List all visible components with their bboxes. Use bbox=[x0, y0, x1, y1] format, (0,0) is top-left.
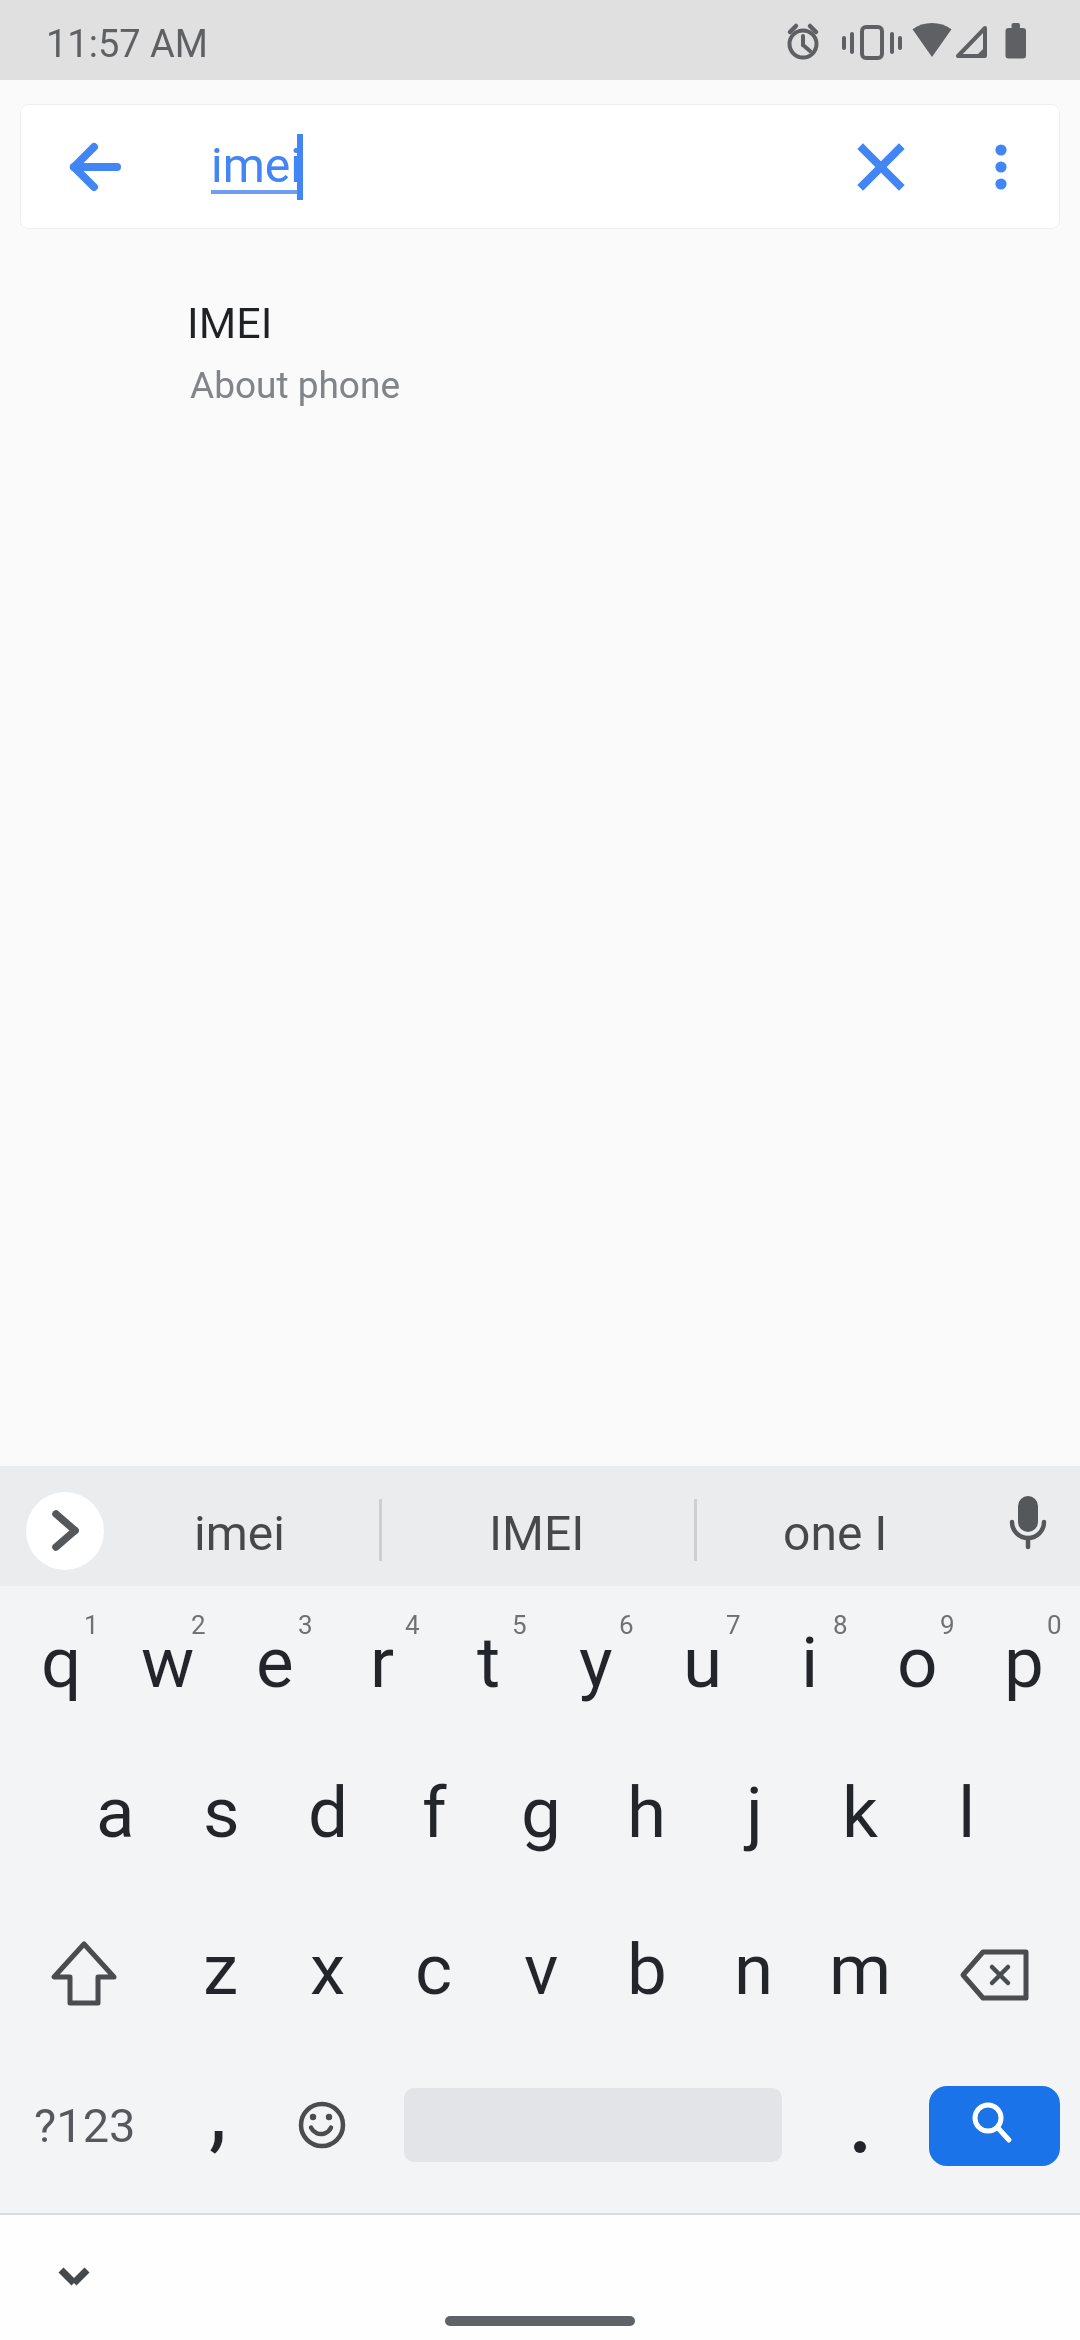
staticText: , bbox=[209, 2058, 227, 2163]
staticText: e bbox=[256, 1621, 294, 1704]
button[interactable]: i bbox=[757, 1592, 863, 1744]
button[interactable]: j bbox=[701, 1742, 807, 1894]
button[interactable] bbox=[30, 2051, 150, 2199]
staticText: x bbox=[310, 1928, 346, 2011]
button[interactable]: n bbox=[701, 1899, 807, 2051]
staticText: 4 bbox=[405, 1610, 420, 1640]
staticText: 8 bbox=[833, 1610, 848, 1640]
button[interactable]: q bbox=[8, 1592, 114, 1744]
button[interactable] bbox=[929, 2086, 1060, 2166]
button[interactable]: c bbox=[381, 1899, 487, 2051]
button[interactable]: s bbox=[168, 1742, 274, 1894]
button[interactable]: k bbox=[807, 1742, 913, 1894]
staticText: 11:57 AM bbox=[46, 22, 209, 67]
staticText: About phone bbox=[190, 364, 401, 407]
staticText: h bbox=[627, 1771, 667, 1854]
button[interactable] bbox=[25, 1899, 145, 2051]
staticText: one I bbox=[783, 1505, 888, 1561]
staticText: 3 bbox=[298, 1610, 313, 1640]
button[interactable]: b bbox=[594, 1899, 700, 2051]
button[interactable] bbox=[0, 255, 1080, 440]
staticText: imei bbox=[194, 1505, 285, 1561]
staticText: f bbox=[422, 1771, 447, 1854]
staticText: c bbox=[415, 1928, 453, 2011]
staticText: t bbox=[477, 1621, 501, 1704]
button[interactable]: m bbox=[807, 1899, 913, 2051]
staticText: ?123 bbox=[34, 2098, 136, 2153]
staticText: l bbox=[958, 1771, 976, 1854]
button[interactable]: h bbox=[594, 1742, 700, 1894]
staticText: d bbox=[308, 1771, 349, 1854]
staticText: imei bbox=[211, 137, 302, 193]
button[interactable]: z bbox=[168, 1899, 274, 2051]
staticText: 2 bbox=[191, 1610, 206, 1640]
staticText: w bbox=[141, 1621, 195, 1704]
staticText: 7 bbox=[726, 1610, 741, 1640]
staticText: m bbox=[829, 1928, 892, 2011]
button[interactable]: d bbox=[275, 1742, 381, 1894]
button[interactable] bbox=[168, 2051, 268, 2199]
button[interactable]: x bbox=[275, 1899, 381, 2051]
button[interactable]: p bbox=[971, 1592, 1077, 1744]
button[interactable]: w bbox=[115, 1592, 221, 1744]
button[interactable]: v bbox=[488, 1899, 594, 2051]
staticText: p bbox=[1004, 1621, 1044, 1704]
button[interactable]: r bbox=[329, 1592, 435, 1744]
staticText: s bbox=[203, 1771, 240, 1854]
staticText: r bbox=[370, 1621, 395, 1704]
staticText: 6 bbox=[619, 1610, 634, 1640]
button[interactable]: o bbox=[864, 1592, 970, 1744]
button[interactable]: f bbox=[381, 1742, 487, 1894]
button[interactable] bbox=[699, 1466, 969, 1586]
staticText: z bbox=[203, 1928, 239, 2011]
button[interactable] bbox=[971, 137, 1031, 197]
button[interactable] bbox=[851, 137, 911, 197]
button[interactable]: t bbox=[436, 1592, 542, 1744]
staticText: g bbox=[521, 1771, 561, 1854]
button[interactable] bbox=[40, 2242, 110, 2312]
button[interactable]: e bbox=[222, 1592, 328, 1744]
button[interactable] bbox=[936, 1899, 1056, 2051]
button[interactable] bbox=[994, 1496, 1062, 1564]
button[interactable]: l bbox=[914, 1742, 1020, 1894]
staticText: u bbox=[683, 1621, 723, 1704]
button[interactable] bbox=[384, 1466, 692, 1586]
staticText: i bbox=[801, 1621, 819, 1704]
button[interactable]: g bbox=[488, 1742, 594, 1894]
staticText: IMEI bbox=[489, 1505, 585, 1561]
staticText: 5 bbox=[512, 1610, 527, 1640]
button[interactable]: a bbox=[62, 1742, 168, 1894]
staticText: n bbox=[734, 1928, 774, 2011]
button[interactable]: y bbox=[543, 1592, 649, 1744]
staticText: b bbox=[627, 1928, 667, 2011]
staticText: 1 bbox=[84, 1610, 99, 1640]
staticText: v bbox=[524, 1928, 559, 2011]
staticText: j bbox=[746, 1771, 763, 1854]
staticText: 0 bbox=[1047, 1610, 1062, 1640]
staticText: q bbox=[41, 1621, 82, 1704]
staticText: IMEI bbox=[187, 298, 273, 348]
button[interactable] bbox=[810, 2051, 910, 2199]
button[interactable] bbox=[120, 1466, 378, 1586]
button[interactable] bbox=[64, 137, 124, 197]
staticText: k bbox=[842, 1771, 878, 1854]
button[interactable]: u bbox=[650, 1592, 756, 1744]
staticText: o bbox=[897, 1621, 938, 1704]
staticText: y bbox=[579, 1621, 613, 1704]
button[interactable] bbox=[26, 1492, 104, 1570]
staticText: a bbox=[96, 1771, 135, 1854]
button[interactable] bbox=[272, 2051, 372, 2199]
staticText: 9 bbox=[940, 1610, 955, 1640]
